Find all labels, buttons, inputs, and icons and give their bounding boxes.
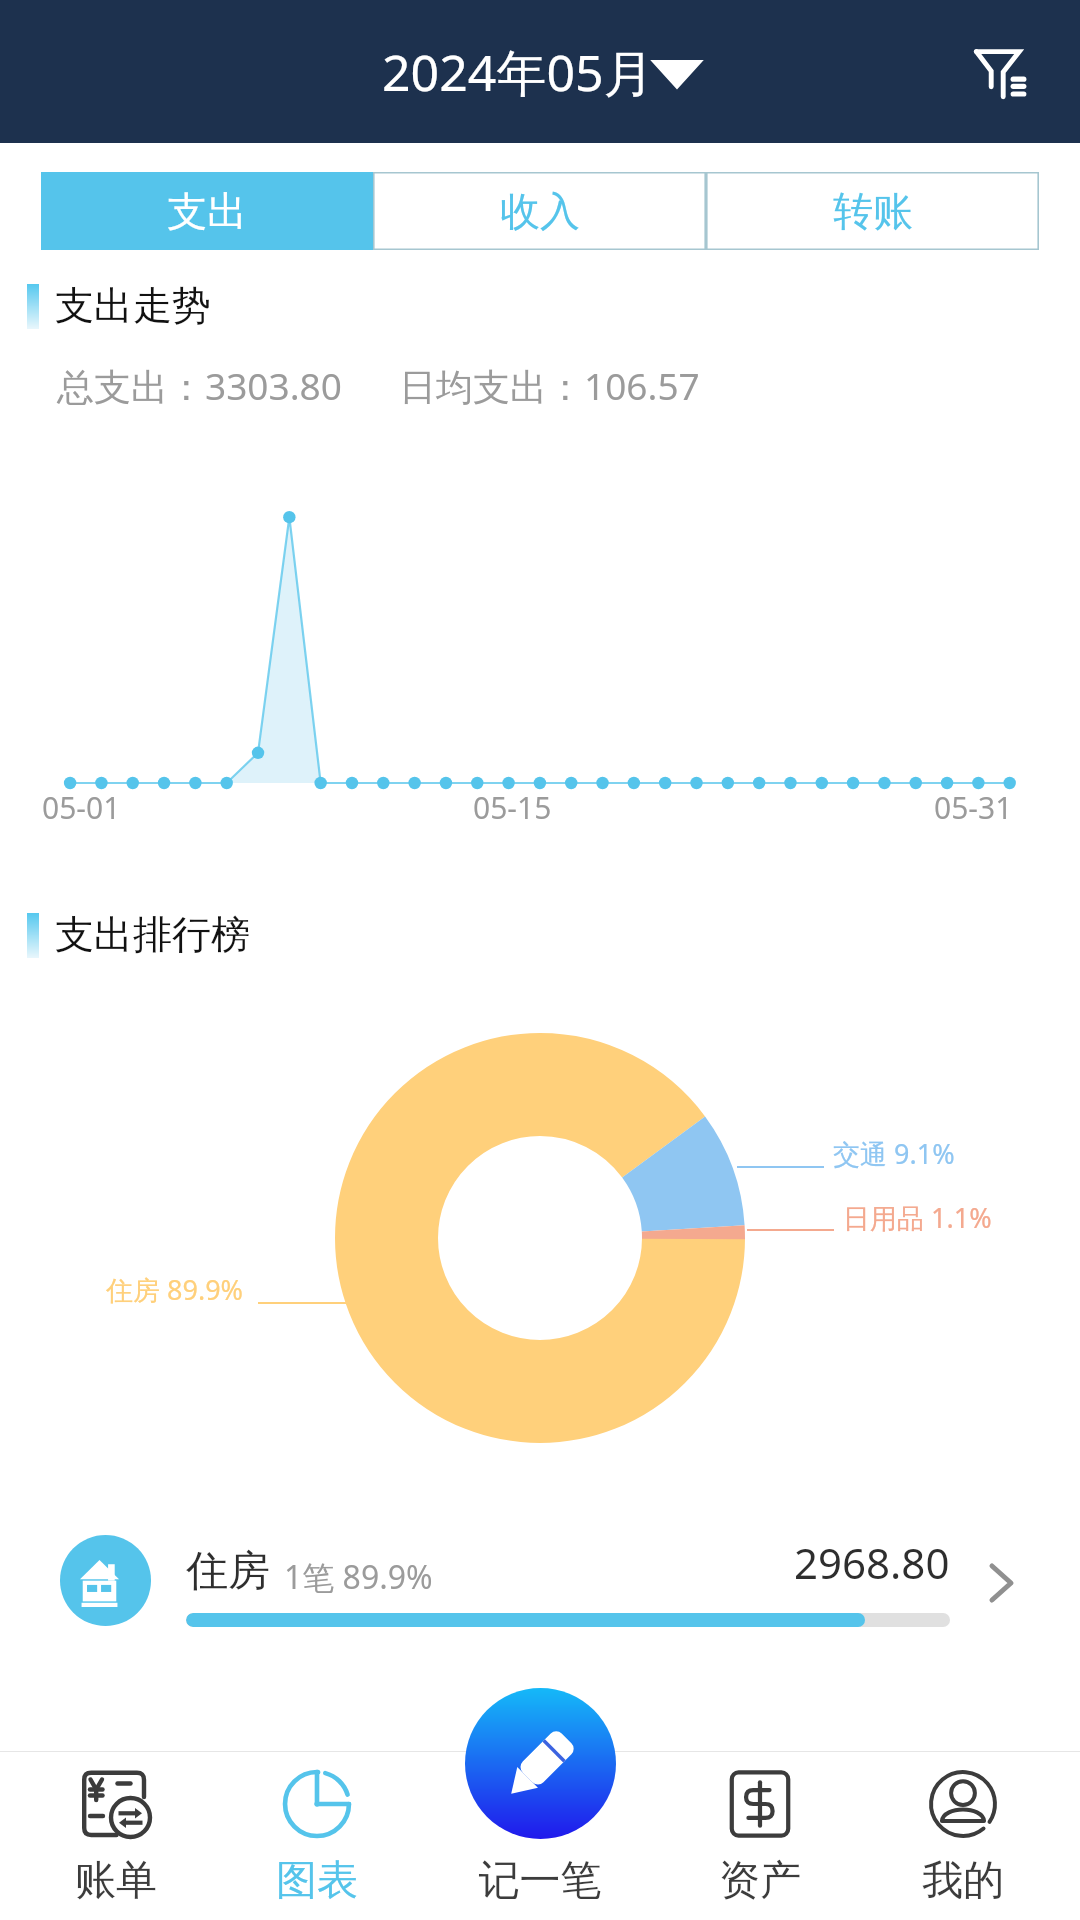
staticText: 05-31 (934, 787, 1013, 828)
staticText: 我的 (857, 1855, 1069, 1907)
staticText: 1笔 89.9% (284, 1555, 433, 1599)
button[interactable]: 筛选 (965, 36, 1037, 108)
staticText: 住房 89.9% (106, 1271, 244, 1308)
button[interactable]: 图表 (211, 1751, 423, 1920)
staticText: 收入 (500, 186, 580, 236)
staticText: 支出走势 (55, 281, 211, 330)
button[interactable]: 资产 (654, 1751, 866, 1920)
staticText: 日均支出：106.57 (399, 360, 700, 411)
staticText: 住房 (186, 1545, 270, 1598)
staticText: 账单 (10, 1855, 222, 1907)
staticText: 交通 9.1% (833, 1135, 955, 1172)
staticText: 2968.80 (794, 1534, 950, 1591)
staticText: 资产 (654, 1855, 866, 1907)
staticText: 总支出：3303.80 (57, 360, 342, 411)
button[interactable]: 2024年05月 (382, 38, 698, 106)
staticText: 日用品 1.1% (843, 1199, 992, 1236)
button[interactable]: 收入 (373, 172, 706, 250)
button[interactable]: 记一笔 (434, 1751, 646, 1920)
staticText: 图表 (211, 1855, 423, 1907)
staticText: 支出排行榜 (55, 910, 250, 959)
button[interactable]: 账单 (10, 1751, 222, 1920)
staticText: 支出 (167, 186, 247, 236)
staticText: 05-15 (473, 787, 552, 828)
button[interactable]: 记一笔 (465, 1688, 616, 1839)
staticText: 2024年05月 (382, 38, 654, 106)
button[interactable]: 我的 (857, 1751, 1069, 1920)
button[interactable]: 转账 (706, 172, 1039, 250)
button[interactable]: 住房 (0, 1515, 1080, 1645)
staticText: 转账 (833, 186, 913, 236)
button[interactable]: 支出 (41, 172, 373, 250)
staticText: 记一笔 (434, 1855, 646, 1907)
staticText: 05-01 (42, 787, 121, 828)
